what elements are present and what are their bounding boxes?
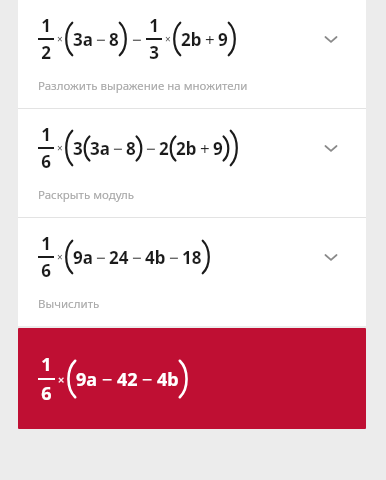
staticText: 8	[109, 28, 119, 51]
staticText: 3a	[90, 137, 110, 160]
staticText: 6	[41, 381, 52, 406]
staticText: +	[200, 137, 210, 160]
button[interactable]: 1	[18, 0, 366, 109]
staticText: 9a	[73, 246, 93, 269]
staticText: 3	[149, 41, 159, 64]
staticText: −	[142, 367, 153, 392]
staticText: 18	[182, 246, 202, 269]
staticText: −	[132, 28, 142, 51]
staticText: 1	[41, 14, 51, 37]
staticText: −	[102, 367, 113, 392]
staticText: 8	[126, 137, 136, 160]
staticText: −	[132, 246, 142, 269]
button[interactable]: 1	[18, 328, 366, 429]
staticText: 3a	[73, 28, 93, 51]
staticText: 6	[41, 259, 51, 282]
staticText: ×	[58, 372, 65, 387]
staticText: 1	[149, 14, 159, 37]
staticText: 2b	[176, 137, 197, 160]
staticText: ×	[57, 250, 63, 264]
staticText: 2	[41, 41, 51, 64]
staticText: 9	[213, 137, 223, 160]
staticText: −	[169, 246, 179, 269]
staticText: ×	[165, 32, 171, 46]
staticText: ×	[57, 141, 63, 155]
staticText: +	[205, 28, 215, 51]
staticText: −	[96, 28, 106, 51]
staticText: 4b	[157, 367, 179, 392]
staticText: 9a	[76, 367, 98, 392]
button[interactable]: Expand step	[316, 133, 346, 163]
staticText: 2b	[181, 28, 202, 51]
button[interactable]: 1	[18, 218, 366, 326]
staticText: 6	[41, 150, 51, 173]
staticText: Вычислить	[38, 296, 100, 312]
button[interactable]: Expand step	[316, 242, 346, 272]
staticText: −	[146, 137, 156, 160]
staticText: 3	[73, 137, 83, 160]
staticText: 24	[109, 246, 129, 269]
staticText: ×	[57, 32, 63, 46]
staticText: −	[96, 246, 106, 269]
staticText: 9	[218, 28, 228, 51]
staticText: 2	[159, 137, 169, 160]
button[interactable]: 1	[18, 109, 366, 218]
staticText: 42	[117, 367, 138, 392]
button[interactable]: Expand step	[316, 24, 346, 54]
staticText: Разложить выражение на множители	[38, 78, 248, 94]
staticText: 1	[41, 352, 52, 377]
staticText: 4b	[145, 246, 166, 269]
staticText: 1	[41, 123, 51, 146]
staticText: −	[113, 137, 123, 160]
staticText: Раскрыть модуль	[38, 187, 134, 203]
staticText: 1	[41, 232, 51, 255]
